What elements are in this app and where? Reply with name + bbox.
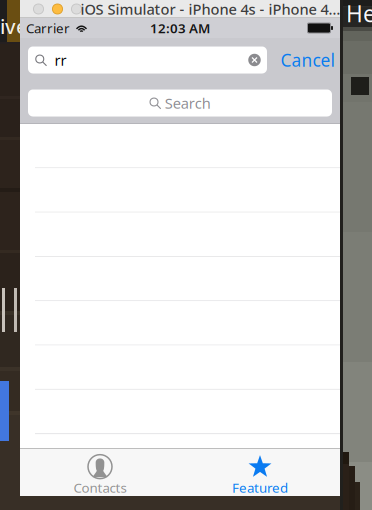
button[interactable]: Search	[20, 89, 340, 116]
button[interactable]: Featured	[180, 448, 340, 496]
staticText: Search	[165, 93, 211, 113]
button[interactable]: Clear text	[242, 46, 267, 73]
staticText: Contacts	[73, 479, 126, 496]
button[interactable]: Contacts	[20, 448, 180, 496]
button[interactable]	[20, 213, 340, 257]
button[interactable]: Minimize window	[48, 0, 67, 18]
staticText: Featured	[232, 479, 288, 496]
staticText: rr	[54, 50, 66, 70]
button[interactable]: Zoom window	[67, 0, 86, 18]
button[interactable]: Close window	[29, 0, 48, 18]
button[interactable]	[20, 390, 340, 434]
staticText: He	[346, 0, 372, 28]
button[interactable]: Cancel	[277, 45, 338, 75]
staticText: 12:03 AM	[150, 19, 210, 37]
staticText: Carrier	[26, 19, 70, 37]
staticText: ive	[0, 13, 27, 40]
staticText: Cancel	[280, 48, 334, 71]
staticText: iOS Simulator - iPhone 4s - iPhone 4…	[80, 0, 340, 19]
